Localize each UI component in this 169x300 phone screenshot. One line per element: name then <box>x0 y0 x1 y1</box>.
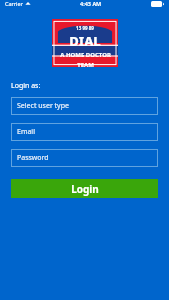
staticText: Login <box>71 182 99 196</box>
staticText: DIAL <box>69 32 101 50</box>
staticText: TEAM <box>77 61 94 67</box>
staticText: 4:43 AM <box>80 0 102 7</box>
staticText: 13 99 89 <box>76 25 94 31</box>
staticText: A HOME DOCTOR <box>60 51 111 59</box>
button[interactable]: Password <box>11 149 158 167</box>
staticText: Carrier <box>5 0 23 7</box>
staticText: Password <box>17 153 49 163</box>
button[interactable]: Login <box>11 179 158 198</box>
staticText: Email <box>17 127 35 137</box>
button[interactable]: Select user type <box>11 97 158 115</box>
staticText: Login as: <box>11 81 41 91</box>
button[interactable]: Email <box>11 123 158 141</box>
staticText: Select user type <box>17 101 69 111</box>
other: Dial A Home Doctor Team logo <box>52 19 118 67</box>
